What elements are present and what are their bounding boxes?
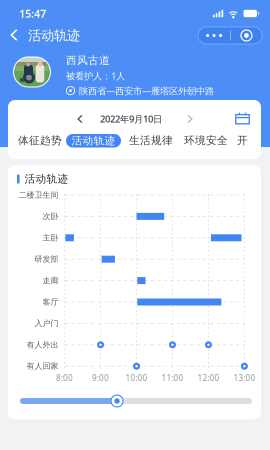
staticText: 开 bbox=[237, 134, 248, 147]
staticText: 9:00 bbox=[92, 373, 109, 383]
staticText: 主卧 bbox=[42, 233, 58, 243]
staticText: 有人外出 bbox=[26, 340, 58, 350]
staticText: 研发部 bbox=[34, 254, 58, 264]
button[interactable]: Next day bbox=[181, 109, 199, 129]
staticText: 13:00 bbox=[233, 373, 255, 383]
button[interactable]: 体征趋势 bbox=[17, 132, 63, 148]
button[interactable]: 开 bbox=[237, 132, 248, 148]
staticText: 活动轨迹 bbox=[25, 172, 69, 185]
button[interactable]: 生活规律 bbox=[128, 132, 174, 148]
staticText: 环境安全 bbox=[184, 134, 228, 147]
staticText: 二楼卫生间 bbox=[18, 190, 58, 200]
button[interactable]: 环境安全 bbox=[183, 132, 229, 148]
button[interactable]: 活动轨迹 bbox=[66, 134, 121, 147]
staticText: 活动轨迹 bbox=[28, 27, 80, 44]
button[interactable]: Back bbox=[3, 24, 25, 46]
button[interactable]: Previous day bbox=[71, 109, 89, 129]
button[interactable]: More options bbox=[198, 27, 262, 44]
staticText: 西风古道 bbox=[66, 54, 110, 67]
staticText: 被看护人：1人 bbox=[66, 70, 125, 82]
staticText: 生活规律 bbox=[129, 134, 173, 147]
staticText: 2022年9月10日 bbox=[100, 113, 162, 125]
staticText: 走廊 bbox=[42, 276, 58, 285]
staticText: 活动轨迹 bbox=[71, 134, 115, 147]
staticText: 10:00 bbox=[125, 373, 147, 383]
button[interactable]: Pick date bbox=[232, 109, 252, 127]
staticText: 入户门 bbox=[34, 318, 58, 328]
staticText: 体征趋势 bbox=[18, 134, 62, 147]
staticText: 陕西省—西安市—雁塔区外朝中路 bbox=[79, 84, 214, 97]
staticText: 客厅 bbox=[42, 297, 58, 307]
staticText: 次卧 bbox=[42, 211, 58, 221]
staticText: 15:47 bbox=[19, 6, 46, 21]
staticText: 11:00 bbox=[161, 373, 183, 383]
staticText: 12:00 bbox=[197, 373, 219, 383]
staticText: 有人回家 bbox=[26, 361, 58, 371]
staticText: 8:00 bbox=[56, 373, 73, 383]
